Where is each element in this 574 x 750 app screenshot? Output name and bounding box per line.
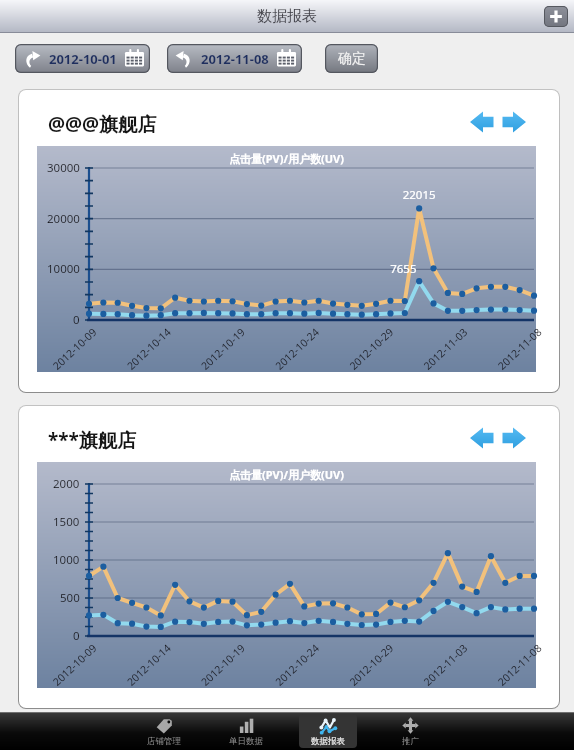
staticText: 2012-11-08 [201,50,269,68]
staticText: 2012-10-01 [49,50,117,68]
staticText: 单日数据 [229,736,263,747]
staticText: 数据报表 [311,736,345,747]
button[interactable]: 单日数据 [217,714,275,748]
staticText: 店铺管理 [147,736,181,747]
staticText: ***旗舰店 [48,427,136,453]
button[interactable]: Previous and next store [462,104,534,140]
staticText: 推广 [402,736,419,747]
staticText: @@@旗舰店 [48,111,157,137]
button[interactable]: 2012-10-01 [15,44,150,73]
button[interactable]: Previous and next store [462,420,534,456]
staticText: 数据报表 [257,7,317,26]
button[interactable]: 2012-11-08 [167,44,302,73]
button[interactable]: 店铺管理 [135,714,193,748]
button[interactable]: 确定 [325,44,378,73]
button[interactable]: 推广 [381,714,439,748]
staticText: 确定 [338,50,366,68]
button[interactable]: 数据报表 [299,714,357,748]
button[interactable]: Add [544,6,568,27]
